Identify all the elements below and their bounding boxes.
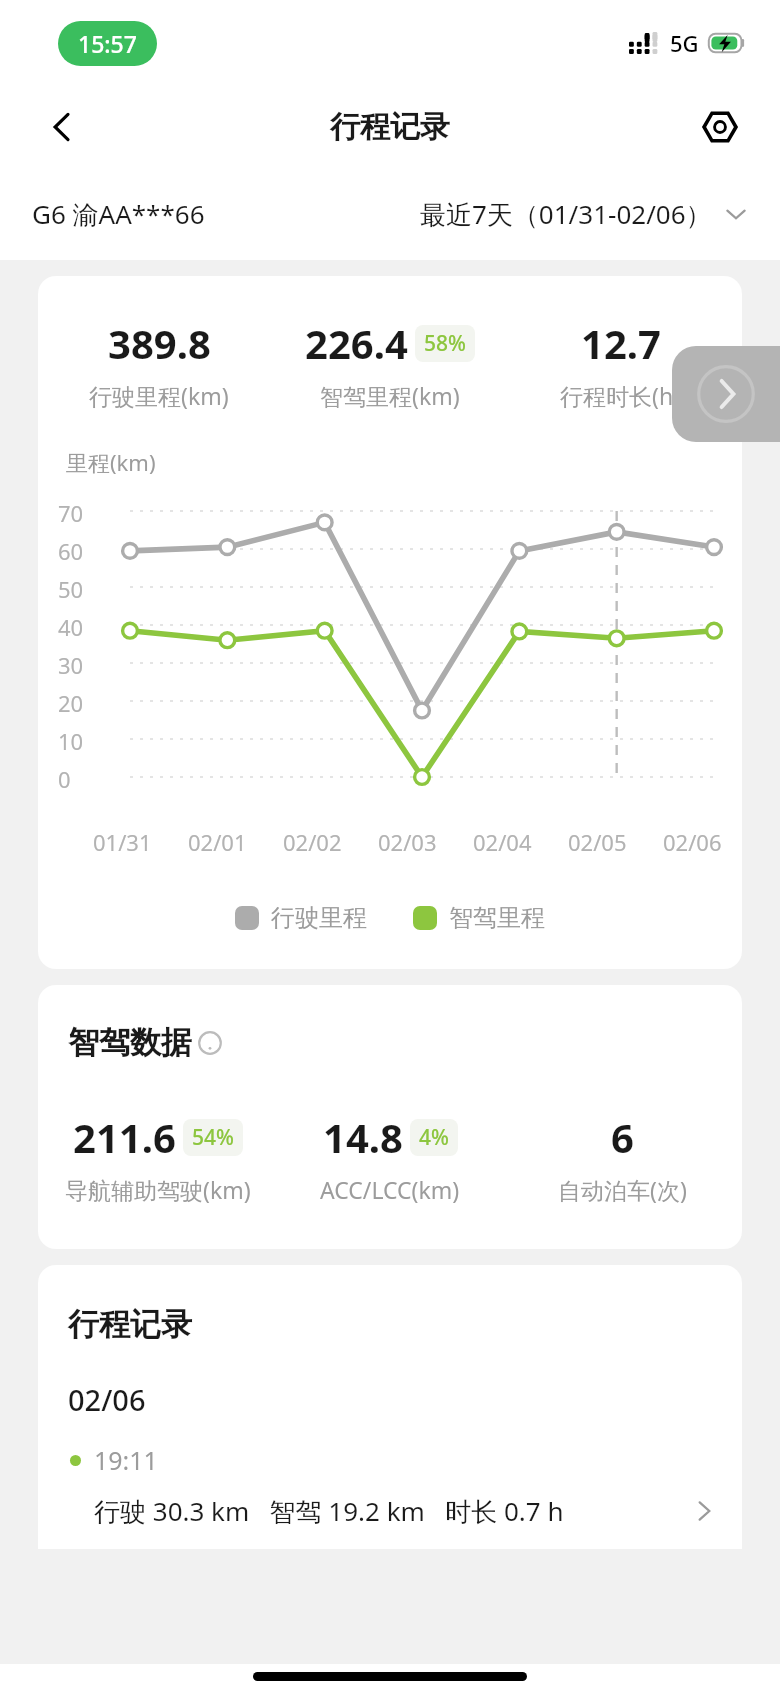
staticText: 02/06 [663, 827, 722, 857]
staticText: 226.4 [305, 316, 408, 370]
staticText: 智驾数据 [68, 1023, 192, 1062]
staticText: 54% [192, 1123, 234, 1152]
button[interactable]: 最近7天（01/31-02/06） [420, 186, 748, 242]
staticText: 02/05 [568, 827, 627, 857]
button[interactable]: Next page [672, 346, 780, 442]
staticText: 10 [58, 726, 84, 756]
staticText: 5G [670, 28, 699, 58]
staticText: 里程(km) [66, 447, 156, 477]
button[interactable]: 行驶里程 [235, 903, 367, 933]
staticText: 02/06 [68, 1380, 146, 1419]
staticText: 6 [611, 1110, 634, 1164]
staticText: 智驾里程 [449, 903, 545, 933]
staticText: 自动泊车(次) [558, 1174, 687, 1205]
staticText: 15:57 [78, 28, 137, 59]
staticText: 12.7 [581, 316, 661, 370]
staticText: 4% [419, 1123, 449, 1152]
staticText: 02/03 [378, 827, 437, 857]
staticText: 30 [58, 650, 84, 680]
staticText: 19:11 [94, 1443, 158, 1477]
staticText: 行程记录 [330, 108, 450, 146]
staticText: 60 [58, 536, 84, 566]
staticText: 最近7天（01/31-02/06） [420, 196, 712, 232]
button[interactable]: G6 渝AA***66 [32, 186, 205, 242]
staticText: 20 [58, 688, 84, 718]
staticText: 211.6 [73, 1110, 176, 1164]
staticText: G6 渝AA***66 [32, 196, 205, 232]
button[interactable]: 智驾里程 [413, 903, 545, 933]
staticText: 58% [424, 329, 466, 358]
button[interactable]: 19:11 [38, 1443, 742, 1529]
staticText: 行驶里程(km) [89, 380, 229, 411]
staticText: 01/31 [93, 827, 152, 857]
staticText: 02/01 [188, 827, 247, 857]
staticText: 50 [58, 574, 84, 604]
staticText: 02/04 [473, 827, 532, 857]
button[interactable]: Back [34, 99, 90, 155]
staticText: 02/02 [283, 827, 342, 857]
staticText: 行程时长(h) [560, 380, 681, 411]
staticText: 14.8 [323, 1110, 403, 1164]
staticText: 389.8 [108, 316, 211, 370]
staticText: 智驾里程(km) [320, 380, 460, 411]
staticText: 70 [58, 498, 84, 528]
staticText: 0 [58, 764, 71, 794]
staticText: 导航辅助驾驶(km) [65, 1174, 251, 1205]
staticText: ACC/LCC(km) [320, 1174, 460, 1205]
staticText: 行程记录 [68, 1305, 192, 1344]
staticText: 行驶里程 [271, 903, 367, 933]
button[interactable]: 智驾数据 [68, 1023, 222, 1062]
staticText: 40 [58, 612, 84, 642]
button[interactable]: Settings [692, 99, 748, 155]
staticText: 行驶 30.3 km 智驾 19.2 km 时长 0.7 h [94, 1493, 564, 1529]
